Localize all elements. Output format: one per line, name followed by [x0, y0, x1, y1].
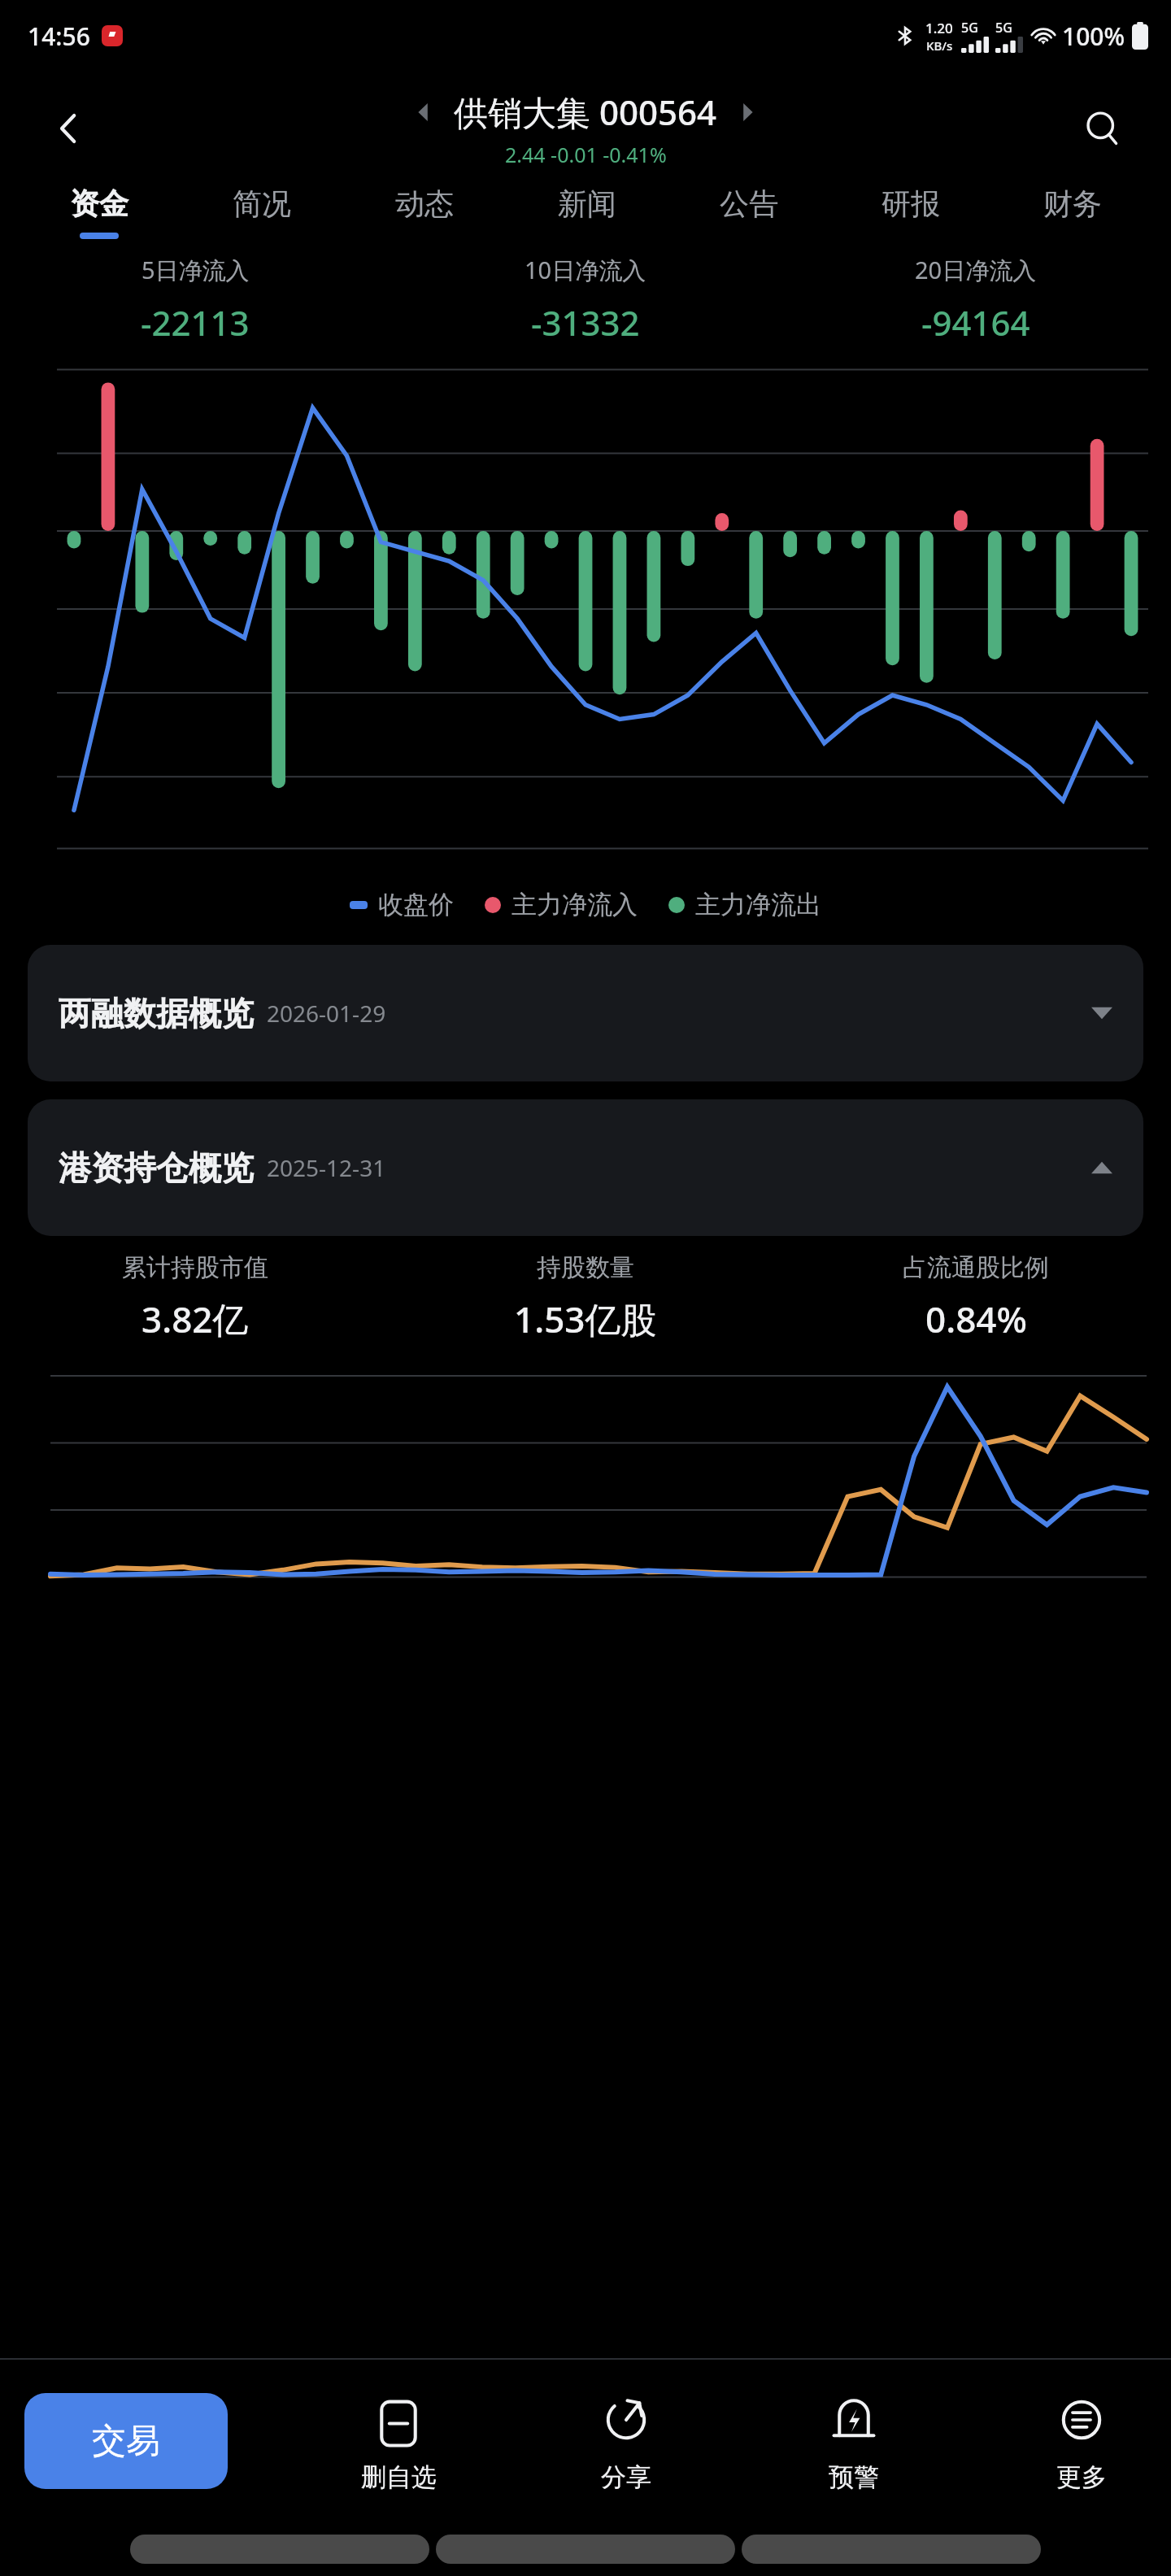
staticText: 14:56 [28, 20, 90, 53]
button[interactable]: Remove from watchlist [342, 2390, 455, 2493]
other: Remove from watchlist [368, 2390, 429, 2450]
button[interactable]: 5日净流入 [0, 254, 390, 346]
staticText: 1.53亿股 [514, 1295, 657, 1343]
button[interactable]: 研报 [829, 185, 991, 239]
button[interactable]: 资金 [18, 185, 181, 239]
other: Share [596, 2390, 656, 2450]
staticText: 5G [995, 19, 1012, 37]
button[interactable]: Share [569, 2390, 683, 2493]
staticText: 5G [961, 19, 978, 37]
staticText: 100% [1062, 20, 1125, 53]
button[interactable]: Search [1072, 98, 1134, 159]
button[interactable]: 新闻 [506, 185, 668, 239]
button[interactable]: Back [37, 98, 99, 159]
staticText: 2025-12-31 [267, 1152, 386, 1183]
staticText: 预警 [829, 2461, 879, 2493]
staticText: 删自选 [361, 2461, 437, 2493]
staticText: 主力净流出 [695, 889, 821, 920]
staticText: 交易 [92, 2420, 160, 2463]
other: Previous stock [415, 103, 433, 121]
staticText: 2026-01-29 [267, 998, 386, 1029]
other: Price alert [824, 2390, 884, 2450]
staticText: 简况 [233, 185, 291, 222]
staticText: 研报 [882, 185, 940, 222]
staticText: 3.82亿 [141, 1295, 249, 1343]
button[interactable]: 20日净流入 [781, 254, 1171, 346]
button[interactable]: 持股数量 [390, 1252, 781, 1343]
staticText: KB/s [926, 37, 953, 54]
staticText: -31332 [531, 299, 640, 346]
staticText: 2.44 -0.01 -0.41% [505, 141, 667, 168]
staticText: 两融数据概览 [59, 993, 254, 1033]
staticText: 10日净流入 [525, 254, 646, 286]
staticText: 占流通股比例 [903, 1252, 1049, 1283]
button[interactable]: 累计持股市值 [0, 1252, 390, 1343]
staticText: -22113 [141, 299, 250, 346]
staticText: 1.20 [925, 19, 953, 37]
button[interactable]: 10日净流入 [390, 254, 781, 346]
staticText: 持股数量 [537, 1252, 634, 1283]
button[interactable]: 简况 [181, 185, 343, 239]
other: Next stock [738, 103, 756, 121]
button[interactable]: 公告 [668, 185, 829, 239]
button[interactable]: 动态 [343, 185, 506, 239]
staticText: 资金 [70, 185, 128, 222]
button[interactable]: Price alert [797, 2390, 911, 2493]
staticText: 累计持股市值 [122, 1252, 268, 1283]
staticText: 新闻 [558, 185, 616, 222]
staticText: 公告 [720, 185, 778, 222]
staticText: 20日净流入 [915, 254, 1037, 286]
staticText: 0.84% [925, 1295, 1027, 1343]
staticText: 分享 [601, 2461, 651, 2493]
staticText: 供销大集 000564 [454, 89, 717, 135]
other: More [1051, 2390, 1112, 2450]
staticText: 动态 [395, 185, 454, 222]
staticText: 收盘价 [378, 889, 454, 920]
staticText: 5日净流入 [141, 254, 250, 286]
staticText: 财务 [1043, 185, 1102, 222]
staticText: -94164 [921, 299, 1030, 346]
button[interactable]: 交易 [24, 2393, 228, 2489]
staticText: 更多 [1056, 2461, 1107, 2493]
button[interactable]: 占流通股比例 [781, 1252, 1171, 1343]
button[interactable]: More [1025, 2390, 1138, 2493]
button[interactable]: 两融数据概览 [28, 945, 1143, 1081]
button[interactable]: 财务 [991, 185, 1153, 239]
staticText: 港资持仓概览 [59, 1147, 254, 1188]
button[interactable]: 港资持仓概览 [28, 1099, 1143, 1236]
staticText: 主力净流入 [511, 889, 638, 920]
